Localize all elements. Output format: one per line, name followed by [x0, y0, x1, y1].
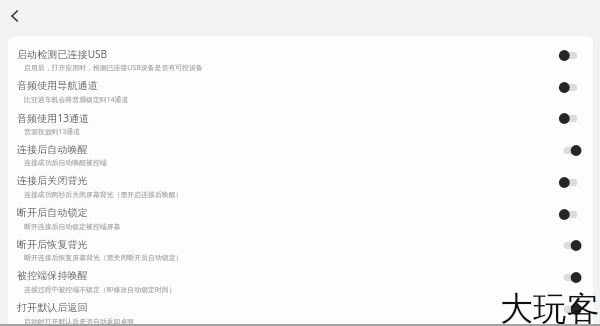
- button[interactable]: Back: [0, 1, 30, 31]
- staticText: 比亚迪车机会将音频锁定到14通道: [24, 95, 129, 104]
- staticText: 被控端保持唤醒: [17, 269, 88, 282]
- button[interactable]: Toggle on: [553, 142, 587, 159]
- staticText: 启动检测已连接USB: [17, 47, 108, 61]
- staticText: 打开默认后返回: [17, 301, 88, 314]
- staticText: 断开后恢复背光: [17, 238, 88, 251]
- button[interactable]: Toggle off: [553, 206, 587, 223]
- button[interactable]: [8, 229, 592, 261]
- button[interactable]: Toggle on: [553, 237, 587, 254]
- staticText: 大玩客: [500, 288, 600, 326]
- staticText: 连接后自动唤醒: [17, 143, 88, 156]
- button[interactable]: Toggle on: [553, 269, 587, 286]
- button[interactable]: [8, 166, 592, 198]
- staticText: 断开后自动锁定: [17, 206, 88, 219]
- staticText: 连接成功两秒后关闭屏幕背光（需开启连接后唤醒）: [24, 190, 183, 199]
- staticText: 连接后关闭背光: [17, 174, 88, 187]
- button[interactable]: [8, 293, 592, 325]
- staticText: 启用后，打开应用时，检测已连接USB设备是否有可控设备: [24, 63, 203, 72]
- staticText: 音源投放到13通道: [24, 127, 81, 136]
- button[interactable]: Toggle on: [553, 301, 587, 318]
- staticText: 音频使用导航通道: [17, 79, 98, 92]
- staticText: 连接过程中被控端不锁定（即修改自动锁定时间）: [24, 285, 176, 294]
- button[interactable]: [8, 198, 592, 230]
- staticText: 断开连接后恢复屏幕背光（需关闭断开后自动锁定）: [24, 253, 183, 262]
- button[interactable]: Toggle off: [553, 79, 587, 96]
- staticText: 启动时打开默认后是否自动返回桌面: [24, 317, 135, 326]
- button[interactable]: Toggle off: [553, 174, 587, 191]
- button[interactable]: Toggle off: [553, 47, 587, 64]
- staticText: 音频使用13通道: [17, 111, 90, 125]
- button[interactable]: [8, 102, 592, 134]
- button[interactable]: [8, 261, 592, 293]
- button[interactable]: [8, 134, 592, 166]
- staticText: 断开连接后自动锁定被控端屏幕: [24, 222, 121, 231]
- staticText: 连接成功后自动唤醒被控端: [24, 158, 107, 167]
- button[interactable]: Toggle off: [553, 110, 587, 127]
- button[interactable]: [8, 39, 592, 71]
- button[interactable]: [8, 71, 592, 103]
